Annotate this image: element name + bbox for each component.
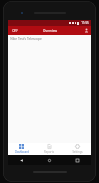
button[interactable]: Dashboard [8, 143, 35, 155]
staticText: Settings [72, 150, 83, 154]
staticText: Dashboard [15, 150, 29, 154]
button[interactable]: Back [8, 155, 35, 165]
button[interactable]: Home [35, 155, 63, 165]
staticText: Overview [43, 29, 57, 33]
button[interactable]: Recents [63, 155, 91, 165]
button[interactable]: Reports [35, 143, 63, 155]
staticText: Reports [44, 150, 54, 154]
button[interactable]: Account [81, 26, 91, 35]
button[interactable]: Settings [63, 143, 91, 155]
staticText: OFF [12, 29, 18, 33]
staticText: Nike Test's Telescope [10, 37, 42, 41]
button[interactable]: Menu [8, 26, 22, 35]
button[interactable]: Nike Test's Telescope [8, 35, 91, 42]
staticText: 11:55 [81, 21, 89, 25]
